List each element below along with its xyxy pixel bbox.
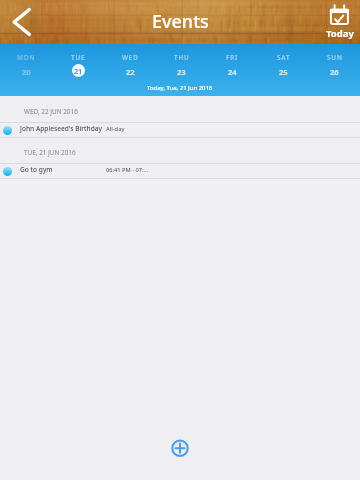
- button[interactable]: Today: [320, 0, 360, 44]
- button[interactable]: WED: [104, 44, 156, 82]
- staticText: 23: [177, 67, 186, 77]
- staticText: SUN: [327, 53, 343, 62]
- staticText: 20: [22, 67, 31, 77]
- button[interactable]: TUE: [52, 44, 104, 82]
- button[interactable]: Add event: [162, 430, 198, 466]
- staticText: TUE: [71, 53, 86, 62]
- button[interactable]: John Appleseed's Birthday: [0, 123, 360, 137]
- staticText: 25: [279, 67, 288, 77]
- staticText: FRI: [226, 53, 239, 62]
- staticText: Go to gym: [20, 165, 53, 174]
- button[interactable]: MON: [0, 44, 52, 82]
- button[interactable]: THU: [156, 44, 207, 82]
- staticText: TUE, 21 JUN 2016: [24, 148, 76, 157]
- staticText: Events: [152, 9, 209, 34]
- staticText: 22: [126, 67, 135, 77]
- staticText: Today, Tue, 21 Jun 2016: [147, 84, 213, 92]
- button[interactable]: FRI: [207, 44, 258, 82]
- staticText: MON: [17, 53, 36, 62]
- staticText: WED, 22 JUN 2016: [24, 107, 78, 116]
- staticText: 06:41 PM - 07:...: [106, 166, 149, 174]
- staticText: THU: [174, 53, 190, 62]
- staticText: 26: [330, 67, 339, 77]
- button[interactable]: Back: [0, 0, 40, 44]
- button[interactable]: SUN: [309, 44, 360, 82]
- button[interactable]: Today, Tue, 21 Jun 2016: [0, 82, 360, 96]
- staticText: All-day: [106, 125, 125, 133]
- staticText: SAT: [277, 53, 291, 62]
- button[interactable]: SAT: [258, 44, 309, 82]
- button[interactable]: Go to gym: [0, 164, 360, 178]
- staticText: 24: [228, 67, 237, 77]
- staticText: Today: [326, 27, 354, 40]
- staticText: John Appleseed's Birthday: [20, 124, 103, 133]
- staticText: 21: [74, 66, 83, 76]
- staticText: WED: [122, 53, 139, 62]
